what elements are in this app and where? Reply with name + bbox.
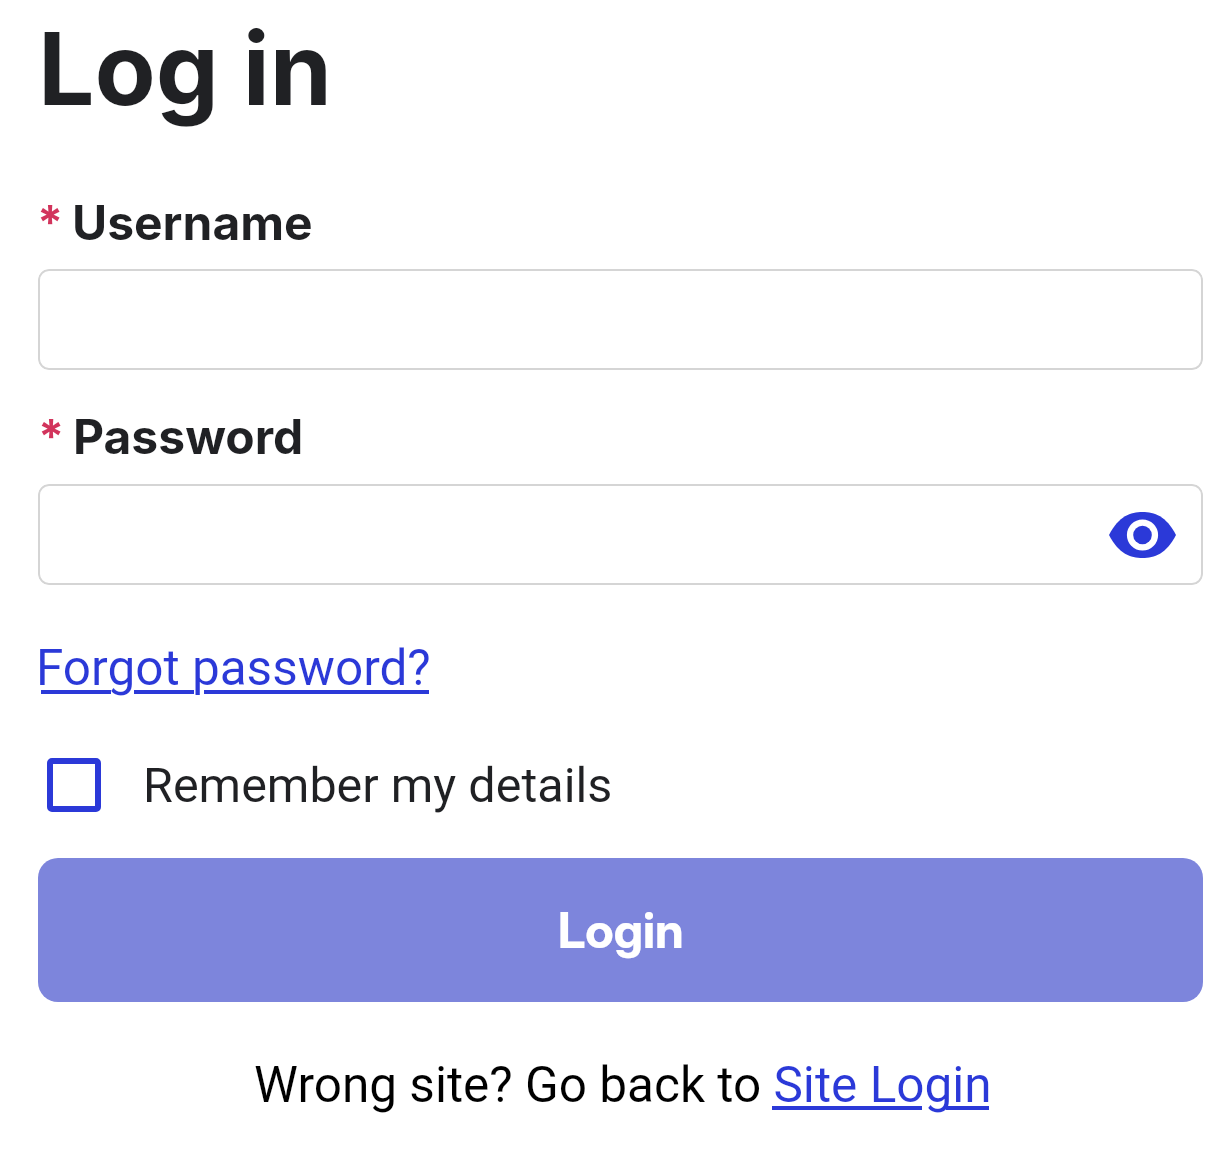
staticText: Forgot password? xyxy=(36,639,431,697)
staticText: Login xyxy=(558,901,684,960)
staticText: Wrong site? Go back to Site Login xyxy=(254,1056,992,1114)
staticText: Password xyxy=(73,407,304,465)
button[interactable]: Show password xyxy=(1109,512,1176,558)
button[interactable] xyxy=(38,269,1203,370)
staticText: Remember my details xyxy=(143,757,613,814)
button[interactable]: Remember my details xyxy=(43,756,613,814)
staticText: Username xyxy=(72,193,313,251)
button[interactable]: Site Login xyxy=(770,1056,988,1106)
staticText: * xyxy=(37,193,64,250)
button[interactable]: Forgot password? xyxy=(36,636,432,698)
staticText: * xyxy=(38,407,65,464)
button[interactable]: Show password xyxy=(38,484,1203,585)
button[interactable]: Login xyxy=(38,858,1203,1002)
staticText: Log in xyxy=(38,8,333,129)
